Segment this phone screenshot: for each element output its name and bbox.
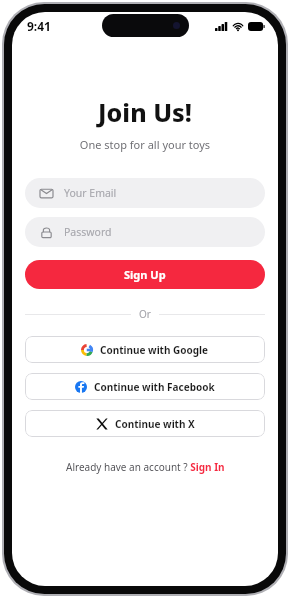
staticText: One stop for all your toys: [12, 137, 278, 152]
button[interactable]: Your Email: [25, 178, 265, 208]
staticText: Continue with Facebook: [94, 380, 215, 394]
staticText: Or: [139, 307, 151, 321]
staticText: Continue with Google: [100, 343, 209, 357]
button[interactable]: Password: [25, 217, 265, 247]
button[interactable]: Continue with X: [25, 410, 265, 437]
staticText: Password: [64, 225, 112, 239]
staticText: Your Email: [64, 186, 117, 200]
button[interactable]: Continue with Google: [25, 336, 265, 363]
staticText: Join Us!: [12, 95, 278, 129]
staticText: Sign Up: [124, 267, 166, 282]
staticText: Already have an account ? Sign In: [66, 460, 225, 474]
button[interactable]: Already have an account ? Sign In: [25, 460, 265, 474]
staticText: 9:41: [27, 18, 51, 34]
button[interactable]: Sign Up: [25, 260, 265, 289]
button[interactable]: Continue with Facebook: [25, 373, 265, 400]
staticText: Continue with X: [115, 417, 195, 431]
